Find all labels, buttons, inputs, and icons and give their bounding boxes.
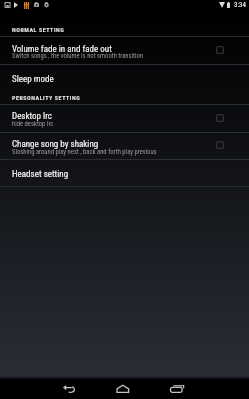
staticText: Volume fade in and fade out — [12, 44, 112, 55]
button[interactable]: Volume fade in and fade out — [0, 37, 249, 64]
staticText: PERSONALITY SETTING — [12, 94, 81, 101]
staticText: 3:34 — [234, 1, 247, 9]
button[interactable]: Desktop lrc — [0, 105, 249, 132]
button[interactable]: Headset setting — [0, 159, 249, 186]
button[interactable]: Toggle setting — [210, 41, 230, 59]
staticText: Switch songs , the volume is not smooth … — [12, 52, 144, 60]
staticText: Sloshing around play next , back and for… — [12, 148, 157, 156]
staticText: Desktop lrc — [12, 111, 52, 122]
button[interactable]: Change song by shaking — [0, 133, 249, 158]
button[interactable]: Home — [109, 378, 138, 399]
button[interactable]: Back — [56, 378, 85, 399]
staticText: Change song by shaking — [12, 139, 99, 150]
button[interactable]: Toggle setting — [210, 136, 230, 154]
staticText: Sleep mode — [12, 74, 54, 85]
staticText: Headset setting — [12, 169, 69, 180]
button[interactable]: Sleep mode — [0, 65, 249, 88]
staticText: NORMAL SETTING — [12, 26, 65, 33]
button[interactable]: Recent apps — [163, 378, 192, 399]
button[interactable]: Toggle setting — [210, 109, 230, 127]
staticText: hide desktop lrc — [12, 120, 54, 128]
